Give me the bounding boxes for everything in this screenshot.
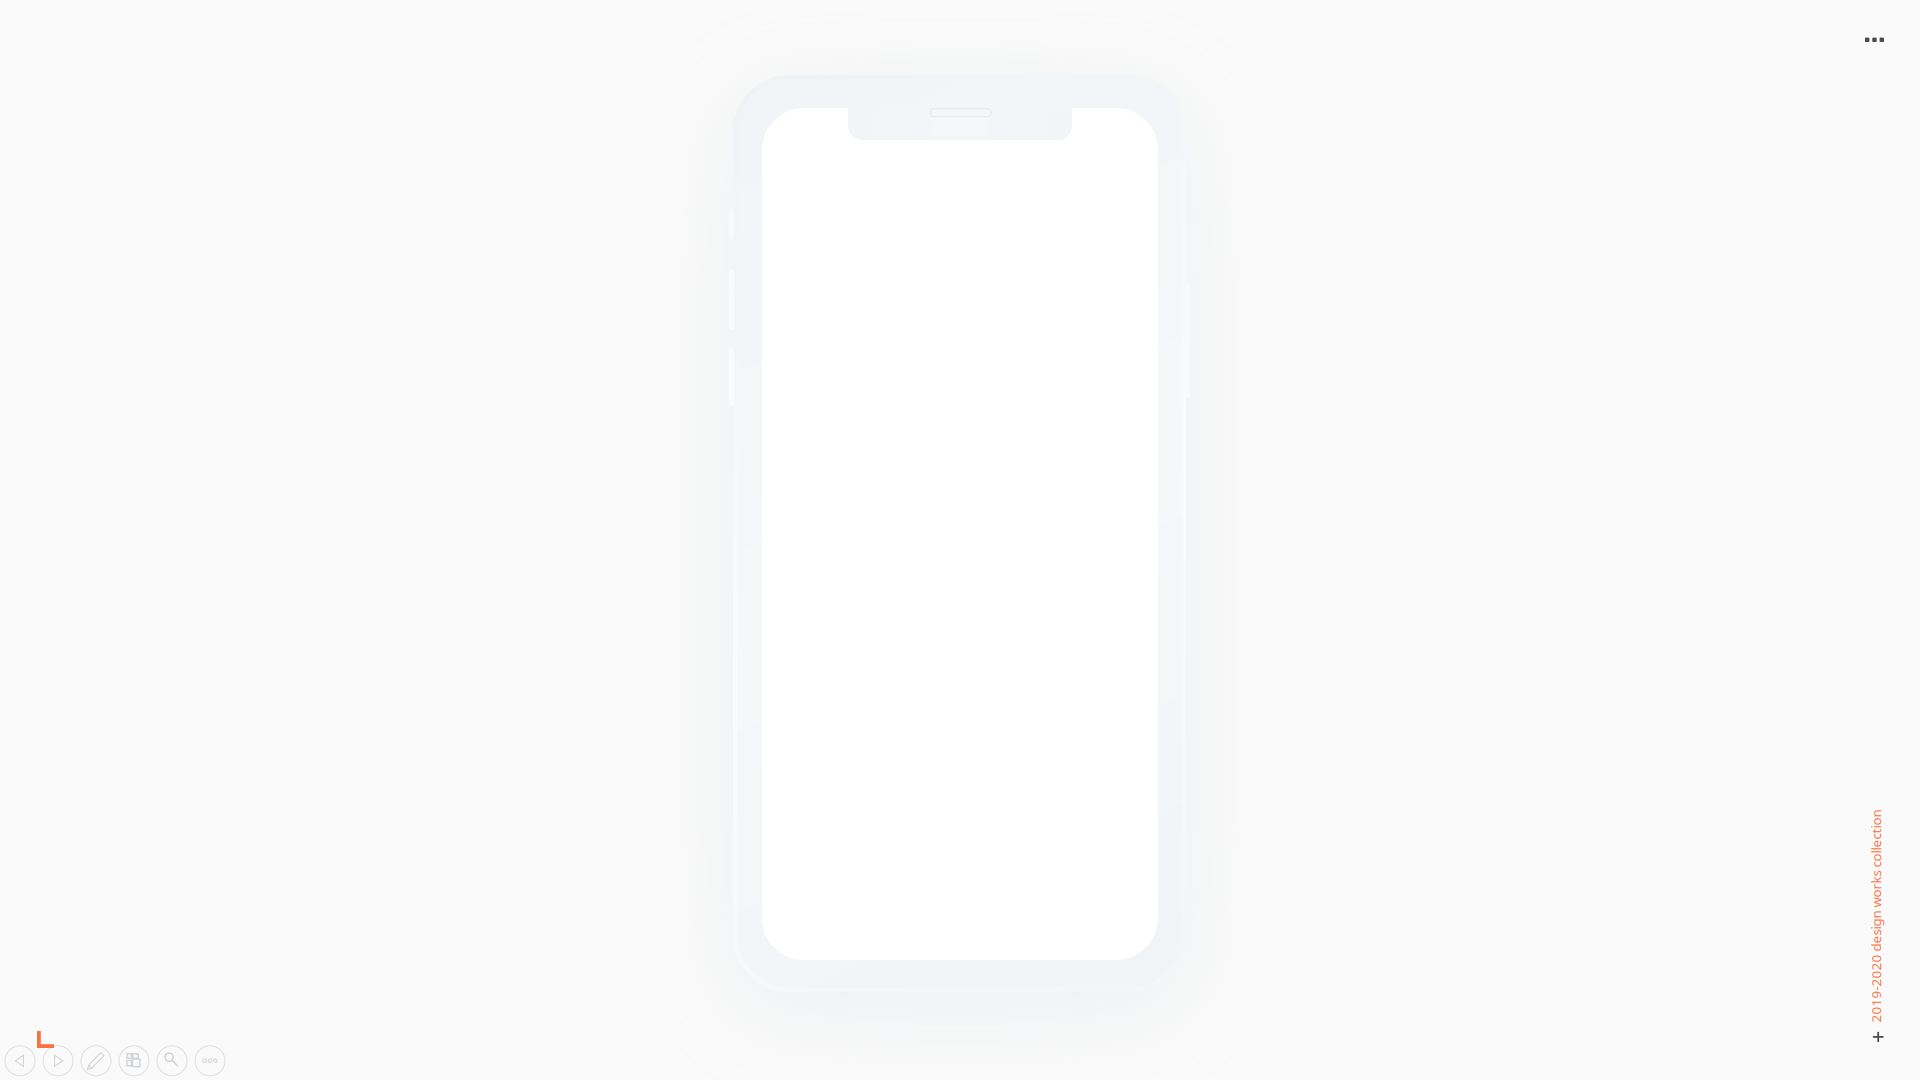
button[interactable]: Draw [81, 1046, 111, 1076]
staticText: 2019-2020 design works collection [1769, 907, 1920, 925]
button[interactable]: Back [5, 1046, 35, 1076]
button[interactable]: More options [1848, 20, 1900, 60]
button[interactable]: Add [1864, 1022, 1893, 1051]
button[interactable]: Search [157, 1046, 187, 1076]
button[interactable]: Layers [119, 1046, 149, 1076]
button[interactable]: More [195, 1046, 225, 1076]
button[interactable]: Forward [43, 1046, 73, 1076]
